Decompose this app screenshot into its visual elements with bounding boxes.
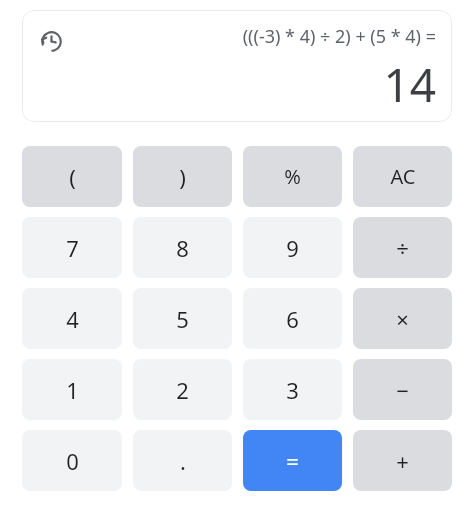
button[interactable]: ) xyxy=(133,146,232,207)
staticText: ( xyxy=(69,162,76,192)
staticText: . xyxy=(180,446,186,476)
staticText: 6 xyxy=(286,304,299,334)
staticText: 4 xyxy=(66,304,79,334)
button[interactable]: History xyxy=(38,28,64,54)
staticText: 0 xyxy=(66,446,79,476)
staticText: % xyxy=(284,163,301,190)
button[interactable]: History xyxy=(22,10,452,122)
button[interactable]: − xyxy=(353,359,452,420)
staticText: ÷ xyxy=(396,233,409,263)
staticText: (((-3) * 4) ÷ 2) + (5 * 4) = xyxy=(242,24,436,49)
button[interactable]: 3 xyxy=(243,359,342,420)
button[interactable]: ( xyxy=(22,146,122,207)
button[interactable]: 7 xyxy=(22,217,122,278)
staticText: ) xyxy=(179,162,186,192)
staticText: 1 xyxy=(66,375,79,405)
button[interactable]: AC xyxy=(353,146,452,207)
staticText: 3 xyxy=(286,375,299,405)
staticText: 14 xyxy=(383,53,436,116)
staticText: AC xyxy=(390,163,416,190)
staticText: × xyxy=(396,304,409,334)
button[interactable]: 0 xyxy=(22,430,122,491)
button[interactable]: 8 xyxy=(133,217,232,278)
staticText: 8 xyxy=(176,233,189,263)
staticText: = xyxy=(286,446,299,476)
staticText: + xyxy=(396,446,409,476)
button[interactable]: + xyxy=(353,430,452,491)
button[interactable]: = xyxy=(243,430,342,491)
button[interactable]: . xyxy=(133,430,232,491)
staticText: 5 xyxy=(176,304,189,334)
staticText: 7 xyxy=(66,233,79,263)
button[interactable]: 5 xyxy=(133,288,232,349)
button[interactable]: × xyxy=(353,288,452,349)
button[interactable]: 1 xyxy=(22,359,122,420)
button[interactable]: 4 xyxy=(22,288,122,349)
button[interactable]: 2 xyxy=(133,359,232,420)
button[interactable]: ÷ xyxy=(353,217,452,278)
button[interactable]: 9 xyxy=(243,217,342,278)
button[interactable]: 6 xyxy=(243,288,342,349)
staticText: 9 xyxy=(286,233,299,263)
staticText: − xyxy=(396,375,409,405)
staticText: 2 xyxy=(176,375,189,405)
button[interactable]: % xyxy=(243,146,342,207)
